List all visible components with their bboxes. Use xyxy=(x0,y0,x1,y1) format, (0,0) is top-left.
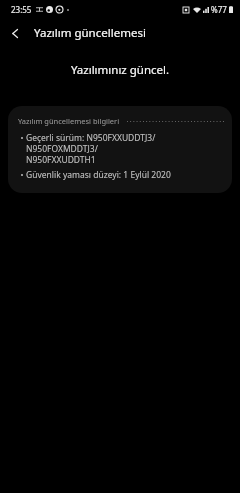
staticText: Yazılımınız güncel. xyxy=(0,62,240,78)
button[interactable]: Geri xyxy=(0,18,30,48)
staticText: 23:55 xyxy=(11,4,32,15)
button[interactable]: Yazılım güncellemesi bilgileri xyxy=(8,106,232,193)
staticText: Geçerli sürüm: N950FXXUDDTJ3/N950FOXMDDT… xyxy=(26,132,224,154)
staticText: Yazılım güncellemesi bilgileri xyxy=(18,116,120,126)
staticText: Güvenlik yaması düzeyi: 1 Eylül 2020 xyxy=(26,169,171,181)
staticText: Yazılım güncellemesi xyxy=(34,25,146,41)
staticText: N950FXXUDDTH1 xyxy=(26,154,96,166)
staticText: %77 xyxy=(211,4,227,15)
